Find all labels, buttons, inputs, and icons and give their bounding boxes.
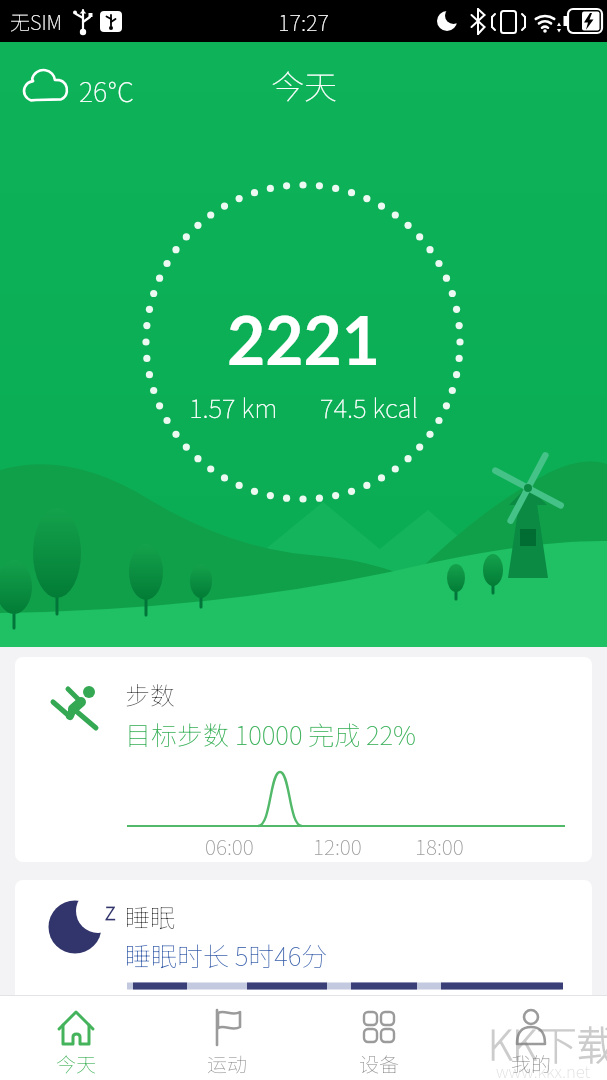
staticText: z — [105, 892, 116, 927]
staticText: KK下载 — [488, 1014, 607, 1072]
button[interactable]: 今天 — [0, 996, 151, 1080]
button[interactable]: 运动 — [151, 996, 303, 1080]
staticText: 无SIM — [10, 7, 62, 36]
staticText: 74.5 kcal — [320, 388, 419, 426]
staticText: 睡眠 — [125, 898, 176, 934]
button[interactable]: 我的 — [455, 996, 607, 1080]
staticText: 今天 — [56, 1049, 96, 1078]
staticText: 12:00 — [313, 831, 362, 861]
staticText: 06:00 — [205, 831, 254, 861]
staticText: 26℃ — [79, 71, 135, 110]
staticText: 运动 — [207, 1049, 247, 1078]
button[interactable]: 设备 — [303, 996, 455, 1080]
staticText: 目标步数 10000 完成 22% — [125, 715, 416, 753]
staticText: 步数 — [125, 676, 176, 712]
staticText: 今天 — [271, 61, 337, 109]
staticText: 17:27 — [278, 5, 329, 37]
button[interactable]: 步数 — [15, 657, 592, 862]
staticText: www.kkx.net — [496, 1058, 591, 1080]
staticText: 设备 — [359, 1049, 399, 1078]
staticText: 2221 — [227, 300, 381, 379]
staticText: 睡眠时长 5时46分 — [125, 936, 328, 974]
staticText: 1.57 km — [189, 388, 278, 426]
button[interactable]: z — [15, 880, 592, 995]
staticText: 18:00 — [415, 831, 464, 861]
staticText: 我的 — [511, 1049, 551, 1078]
